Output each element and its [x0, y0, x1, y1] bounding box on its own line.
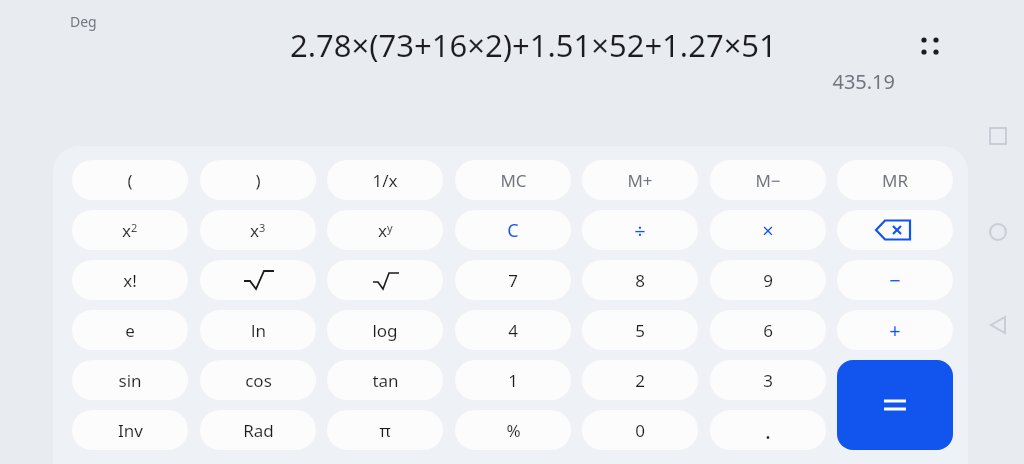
button[interactable]: ÷ — [582, 210, 698, 250]
button[interactable]: Backspace — [837, 210, 953, 250]
button[interactable]: Recents — [988, 126, 1008, 146]
button[interactable]: 6 — [710, 310, 826, 350]
button[interactable]: x! — [72, 260, 188, 300]
staticText: 4 — [508, 319, 518, 342]
button[interactable]: Deg — [70, 12, 97, 31]
button[interactable]: 0 — [582, 410, 698, 450]
button[interactable]: Inv — [72, 410, 188, 450]
staticText: x! — [123, 269, 137, 292]
button[interactable]: ( — [72, 160, 188, 200]
staticText: % — [506, 419, 521, 442]
staticText: − — [889, 267, 901, 294]
staticText: log — [372, 319, 398, 342]
staticText: 1 — [508, 369, 518, 392]
staticText: tan — [372, 369, 399, 392]
button[interactable]: log — [327, 310, 443, 350]
button[interactable]: x2 — [72, 210, 188, 250]
button[interactable]: C — [455, 210, 571, 250]
button[interactable]: Home — [988, 222, 1008, 242]
button[interactable]: . — [710, 410, 826, 450]
staticText: Inv — [118, 419, 143, 442]
staticText: M+ — [627, 169, 653, 192]
staticText: 7 — [508, 269, 518, 292]
staticText: MR — [882, 169, 908, 192]
button[interactable]: 8 — [582, 260, 698, 300]
staticText: × — [762, 217, 774, 244]
button[interactable]: e — [72, 310, 188, 350]
button[interactable]: MR — [837, 160, 953, 200]
button[interactable]: + — [837, 310, 953, 350]
staticText: 1/x — [372, 169, 398, 192]
button[interactable]: 2 — [582, 360, 698, 400]
button[interactable]: tan — [327, 360, 443, 400]
button[interactable]: × — [710, 210, 826, 250]
button[interactable]: ln — [200, 310, 316, 350]
button[interactable]: M+ — [582, 160, 698, 200]
button[interactable]: 1 — [455, 360, 571, 400]
staticText: MC — [500, 169, 527, 192]
staticText: 2.78×(73+16×2)+1.51×52+1.27×51 — [290, 24, 777, 66]
staticText: ln — [251, 319, 266, 342]
button[interactable]: ) — [200, 160, 316, 200]
staticText: 9 — [763, 269, 773, 292]
staticText: 8 — [635, 269, 645, 292]
button[interactable]: 7 — [455, 260, 571, 300]
button[interactable]: M− — [710, 160, 826, 200]
staticText: Rad — [243, 419, 274, 442]
staticText: 2 — [635, 369, 645, 392]
staticText: ÷ — [634, 217, 646, 244]
button[interactable]: 3 — [710, 360, 826, 400]
staticText: π — [379, 419, 391, 442]
staticText: ) — [255, 169, 261, 192]
staticText: 6 — [763, 319, 773, 342]
staticText: + — [889, 317, 901, 344]
staticText: sin — [118, 369, 142, 392]
button[interactable]: Square root — [200, 260, 316, 300]
staticText: 435.19 — [0, 68, 895, 95]
staticText: e — [125, 319, 135, 342]
button[interactable]: 4 — [455, 310, 571, 350]
button[interactable]: % — [455, 410, 571, 450]
staticText: 5 — [635, 319, 645, 342]
staticText: C — [507, 218, 519, 243]
button[interactable]: xy — [327, 210, 443, 250]
button[interactable]: cos — [200, 360, 316, 400]
button[interactable]: Equals — [837, 360, 953, 450]
staticText: 3 — [763, 369, 773, 392]
staticText: 0 — [635, 419, 645, 442]
staticText: x2 — [122, 219, 138, 242]
button[interactable]: x3 — [200, 210, 316, 250]
staticText: . — [765, 415, 771, 445]
button[interactable]: Nth root — [327, 260, 443, 300]
button[interactable]: − — [837, 260, 953, 300]
staticText: cos — [245, 369, 272, 392]
staticText: M− — [755, 169, 781, 192]
button[interactable]: Back — [988, 315, 1008, 335]
staticText: xy — [378, 219, 393, 242]
button[interactable]: sin — [72, 360, 188, 400]
button[interactable]: Expand history — [912, 28, 948, 64]
button[interactable]: 5 — [582, 310, 698, 350]
button[interactable]: MC — [455, 160, 571, 200]
button[interactable]: 9 — [710, 260, 826, 300]
staticText: ( — [127, 169, 133, 192]
button[interactable]: π — [327, 410, 443, 450]
button[interactable]: Rad — [200, 410, 316, 450]
staticText: x3 — [250, 219, 266, 242]
button[interactable]: 1/x — [327, 160, 443, 200]
